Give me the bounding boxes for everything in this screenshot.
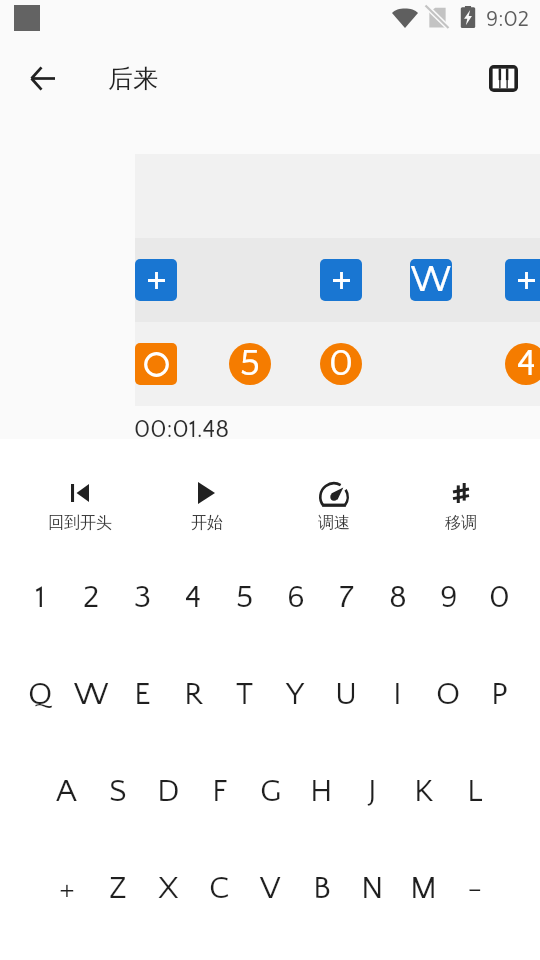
staticText: + — [59, 871, 75, 906]
button[interactable]: V — [245, 840, 296, 937]
staticText: 6 — [287, 580, 305, 615]
button[interactable]: I — [372, 646, 423, 743]
button[interactable]: 0 — [474, 549, 525, 646]
button[interactable]: 3 — [117, 549, 168, 646]
button[interactable]: 2 — [66, 549, 117, 646]
button[interactable]: T — [219, 646, 270, 743]
button[interactable]: Note W — [410, 259, 452, 301]
button[interactable]: R — [168, 646, 219, 743]
staticText: L — [467, 774, 483, 809]
staticText: X — [158, 871, 179, 906]
staticText: 后来 — [108, 63, 158, 94]
button[interactable]: S — [92, 743, 143, 840]
staticText: 2 — [83, 580, 100, 615]
button[interactable]: 1 — [15, 549, 66, 646]
button[interactable]: Y — [270, 646, 321, 743]
staticText: 4 — [185, 580, 202, 615]
staticText: 1 — [35, 580, 46, 615]
button[interactable]: O — [423, 646, 474, 743]
staticText: 5 — [236, 580, 254, 615]
staticText: 0 — [329, 344, 354, 385]
button[interactable]: Back — [18, 54, 66, 102]
staticText: G — [260, 774, 282, 809]
staticText: 回到开头 — [48, 513, 112, 533]
button[interactable]: Note + — [135, 259, 177, 301]
staticText: E — [134, 677, 151, 712]
button[interactable]: U — [321, 646, 372, 743]
staticText: W — [411, 260, 451, 301]
staticText: 调速 — [318, 513, 350, 533]
staticText: J — [368, 774, 377, 809]
button[interactable]: 移调 — [397, 439, 524, 533]
staticText: P — [491, 677, 508, 712]
button[interactable]: G — [245, 743, 296, 840]
button[interactable]: D — [143, 743, 194, 840]
button[interactable]: E — [117, 646, 168, 743]
button[interactable]: P — [474, 646, 525, 743]
button[interactable]: Note O — [135, 343, 177, 385]
staticText: 9 — [440, 580, 458, 615]
button[interactable]: Note 4 — [505, 343, 540, 385]
button[interactable]: K — [398, 743, 449, 840]
button[interactable]: 回到开头 — [16, 439, 143, 533]
staticText: Q — [28, 677, 53, 712]
staticText: I — [393, 677, 402, 712]
staticText: A — [56, 774, 77, 809]
staticText: Z — [109, 871, 127, 906]
button[interactable]: 5 — [219, 549, 270, 646]
button[interactable]: X — [143, 840, 194, 937]
staticText: 5 — [240, 344, 260, 385]
button[interactable]: 调速 — [270, 439, 397, 533]
button[interactable]: Note + — [320, 259, 362, 301]
staticText: K — [414, 774, 434, 809]
button[interactable]: A — [41, 743, 92, 840]
staticText: 9:02 — [486, 7, 529, 31]
staticText: U — [335, 677, 358, 712]
staticText: C — [209, 871, 230, 906]
button[interactable]: Note 5 — [229, 343, 271, 385]
staticText: M — [410, 871, 437, 906]
button[interactable]: C — [194, 840, 245, 937]
staticText: D — [157, 774, 180, 809]
button[interactable]: 6 — [270, 549, 321, 646]
button[interactable]: - — [449, 840, 500, 937]
button[interactable]: 9 — [423, 549, 474, 646]
staticText: - — [467, 871, 483, 906]
staticText: 4 — [517, 344, 536, 385]
button[interactable]: 4 — [168, 549, 219, 646]
staticText: 开始 — [191, 513, 223, 533]
staticText: 00:01.48 — [134, 416, 230, 444]
button[interactable]: M — [398, 840, 449, 937]
button[interactable]: L — [449, 743, 500, 840]
button[interactable]: 开始 — [143, 439, 270, 533]
staticText: 3 — [134, 580, 152, 615]
button[interactable]: W — [66, 646, 117, 743]
staticText: N — [361, 871, 384, 906]
staticText: B — [313, 871, 331, 906]
staticText: V — [260, 871, 281, 906]
button[interactable]: Piano keyboard — [481, 56, 526, 101]
button[interactable]: F — [194, 743, 245, 840]
staticText: 7 — [339, 580, 354, 615]
staticText: W — [74, 677, 109, 712]
button[interactable]: Q — [15, 646, 66, 743]
button[interactable]: Z — [92, 840, 143, 937]
staticText: S — [109, 774, 127, 809]
staticText: 移调 — [445, 513, 477, 533]
staticText: F — [212, 774, 228, 809]
button[interactable]: 7 — [321, 549, 372, 646]
staticText: 8 — [389, 580, 407, 615]
button[interactable]: B — [296, 840, 347, 937]
staticText: 0 — [489, 580, 510, 615]
button[interactable]: H — [296, 743, 347, 840]
button[interactable]: N — [347, 840, 398, 937]
button[interactable]: Note + — [505, 259, 540, 301]
button[interactable]: + — [41, 840, 92, 937]
staticText: O — [436, 677, 461, 712]
button[interactable]: Note 0 — [320, 343, 362, 385]
staticText: Y — [286, 677, 305, 712]
button[interactable]: 8 — [372, 549, 423, 646]
staticText: H — [310, 774, 333, 809]
staticText: T — [236, 677, 254, 712]
button[interactable]: J — [347, 743, 398, 840]
